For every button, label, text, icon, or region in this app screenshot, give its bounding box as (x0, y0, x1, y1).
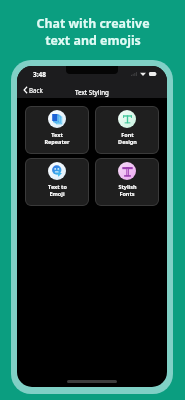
staticText: Text to (48, 183, 67, 190)
staticText: 3:48 (33, 70, 46, 79)
button[interactable]: Text to (25, 158, 89, 206)
button[interactable]: Back (21, 85, 45, 95)
staticText: Font (121, 131, 134, 138)
staticText: Repeater (44, 138, 70, 145)
staticText: Text (51, 131, 63, 138)
staticText: Stylish (118, 183, 137, 190)
staticText: Fonts (119, 190, 135, 197)
button[interactable]: Stylish (95, 158, 159, 206)
staticText: Text Styling (75, 88, 109, 96)
staticText: Back (29, 86, 43, 94)
staticText: Chat with creative (36, 15, 150, 32)
staticText: Design (118, 138, 137, 145)
button[interactable]: Font (95, 106, 159, 154)
staticText: text and emojis (45, 32, 141, 49)
other: Back (23, 86, 28, 94)
staticText: Emoji (49, 190, 65, 197)
button[interactable]: Text (25, 106, 89, 154)
